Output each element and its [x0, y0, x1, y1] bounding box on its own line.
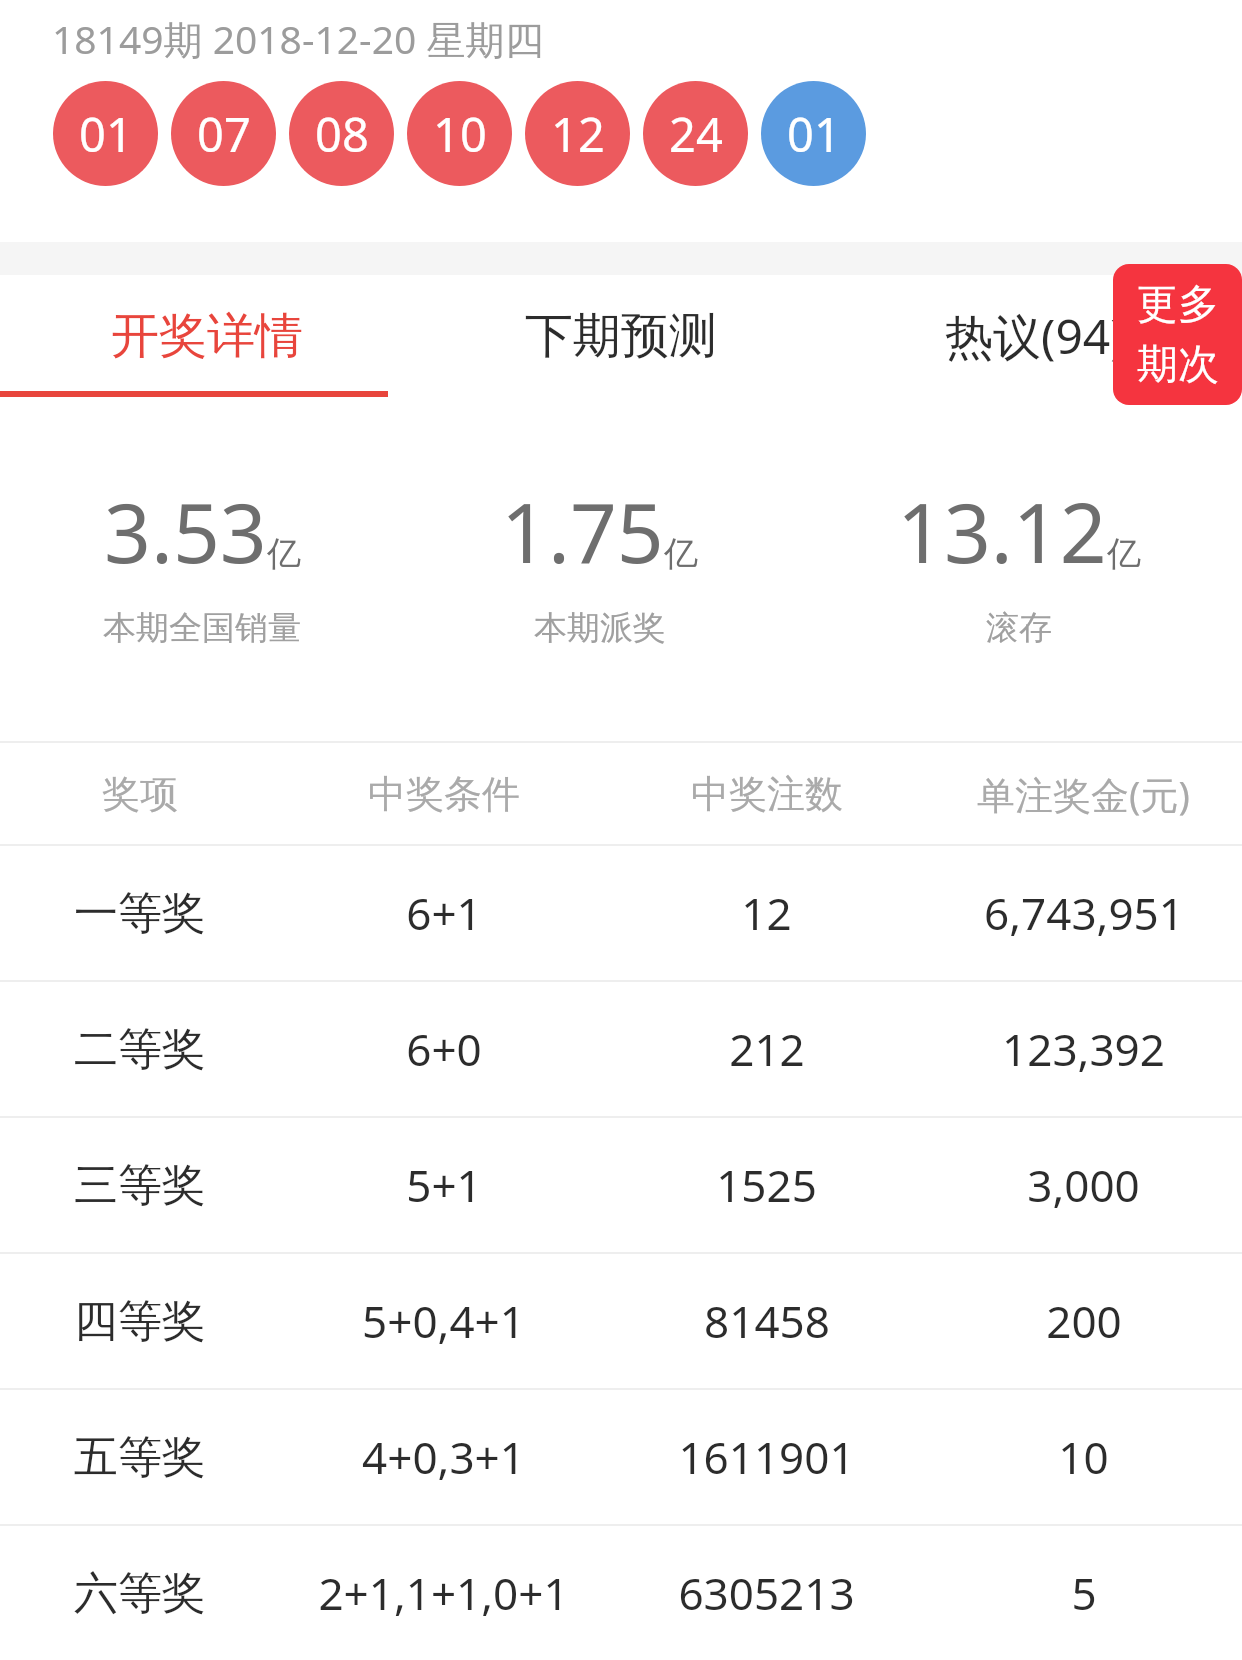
staticText: 五等奖 [74, 1430, 206, 1485]
staticText: 10 [433, 102, 487, 166]
staticText: 10 [1058, 1427, 1109, 1487]
button[interactable]: 号码 12 [525, 81, 630, 186]
button[interactable]: 号码 08 [289, 81, 394, 186]
staticText: 12 [551, 102, 605, 166]
staticText: 5+1 [406, 1155, 482, 1215]
staticText: 3.53 [104, 475, 267, 587]
staticText: 4+0,3+1 [362, 1427, 525, 1487]
button[interactable]: 开奖详情 [0, 275, 414, 397]
staticText: 07 [197, 102, 251, 166]
staticText: 200 [1046, 1291, 1122, 1351]
staticText: 中奖注数 [691, 770, 843, 818]
staticText: 中奖条件 [368, 770, 520, 818]
staticText: 下期预测 [525, 306, 717, 366]
staticText: 热议(94) [945, 303, 1125, 369]
staticText: 期次 [1137, 339, 1219, 391]
staticText: 本期派奖 [534, 607, 666, 649]
staticText: 6+0 [406, 1019, 482, 1079]
staticText: 3,000 [1027, 1155, 1140, 1215]
button[interactable]: 号码 24 [643, 81, 748, 186]
staticText: 本期全国销量 [103, 607, 301, 649]
staticText: 奖项 [102, 770, 178, 818]
staticText: 6+1 [406, 883, 482, 943]
staticText: 18149期 2018-12-20 星期四 [52, 12, 544, 65]
staticText: 六等奖 [74, 1566, 206, 1621]
staticText: 开奖详情 [111, 306, 303, 366]
staticText: 5+0,4+1 [362, 1291, 525, 1351]
staticText: 2+1,1+1,0+1 [318, 1563, 569, 1623]
staticText: 01 [787, 102, 841, 166]
staticText: 亿 [664, 532, 698, 575]
button[interactable]: 号码 01 [761, 81, 866, 186]
staticText: 1525 [716, 1155, 817, 1215]
button[interactable]: 号码 10 [407, 81, 512, 186]
button[interactable]: 号码 07 [171, 81, 276, 186]
staticText: 三等奖 [74, 1158, 206, 1213]
button[interactable]: 号码 01 [53, 81, 158, 186]
staticText: 123,392 [1002, 1019, 1165, 1079]
staticText: 四等奖 [74, 1294, 206, 1349]
staticText: 5 [1071, 1563, 1097, 1623]
staticText: 更多 [1137, 279, 1219, 331]
staticText: 二等奖 [74, 1022, 206, 1077]
staticText: 81458 [704, 1291, 830, 1351]
staticText: 6,743,951 [984, 883, 1184, 943]
staticText: 12 [741, 883, 792, 943]
staticText: 亿 [267, 532, 301, 575]
staticText: 单注奖金(元) [977, 768, 1190, 820]
staticText: 6305213 [678, 1563, 855, 1623]
staticText: 亿 [1107, 532, 1141, 575]
staticText: 01 [79, 102, 133, 166]
staticText: 滚存 [986, 607, 1052, 649]
staticText: 一等奖 [74, 886, 206, 941]
button[interactable]: 热议(94) [828, 275, 1242, 397]
staticText: 1611901 [678, 1427, 855, 1487]
staticText: 08 [315, 102, 369, 166]
staticText: 13.12 [897, 475, 1107, 587]
staticText: 24 [669, 102, 723, 166]
button[interactable]: 更多期次 [1113, 264, 1242, 405]
button[interactable]: 下期预测 [414, 275, 828, 397]
staticText: 1.75 [501, 475, 664, 587]
staticText: 212 [729, 1019, 805, 1079]
